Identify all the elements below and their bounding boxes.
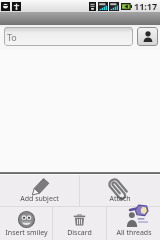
staticText: Add subject [20,194,59,204]
button[interactable]: Discard [53,207,106,240]
staticText: All threads [116,228,152,238]
staticText: Attach [109,194,131,204]
staticText: 11:17 [134,0,158,12]
button[interactable]: Pick contact [137,27,158,46]
staticText: Insert smiley [5,228,48,238]
button[interactable]: All threads [107,207,160,240]
staticText: Discard [67,228,92,238]
button[interactable]: Insert smiley [0,207,52,240]
button[interactable]: Attach [80,175,160,206]
button[interactable]: To [4,27,133,46]
button[interactable]: Add subject [0,175,79,206]
staticText: To [7,31,17,43]
